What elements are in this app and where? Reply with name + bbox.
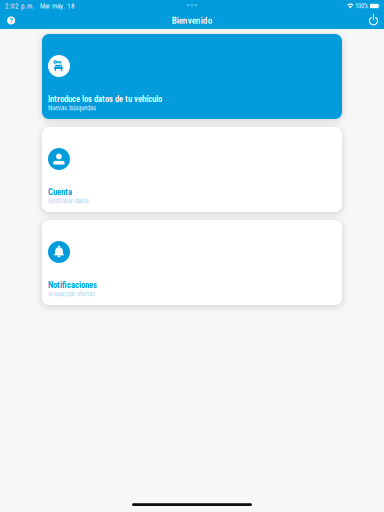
staticText: Visualizar ofertas — [48, 290, 95, 298]
staticText: Introduce los datos de tu vehículo — [48, 94, 162, 104]
button[interactable]: Ayuda — [3, 13, 19, 28]
button[interactable]: Notificaciones — [42, 220, 342, 305]
staticText: 2:02 p.m. Mar may. 18 — [5, 2, 75, 10]
staticText: Gestionar datos — [48, 197, 89, 205]
button[interactable]: Introduce los datos de tu vehículo — [42, 34, 342, 119]
button[interactable]: Cuenta — [42, 127, 342, 212]
button[interactable]: Cerrar sesión — [365, 10, 382, 31]
staticText: ? — [10, 16, 13, 25]
staticText: Cuenta — [48, 187, 72, 197]
staticText: 100% — [355, 2, 368, 10]
staticText: Bienvenido — [172, 15, 213, 26]
staticText: Nuevas búsquedas — [48, 104, 96, 112]
staticText: Notificaciones — [48, 280, 97, 290]
